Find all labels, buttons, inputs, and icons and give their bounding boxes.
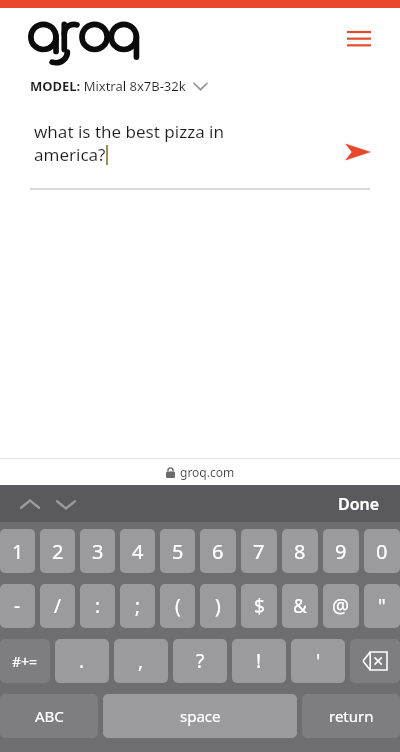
button[interactable]: Previous field: [14, 489, 46, 519]
button[interactable]: ?: [173, 639, 227, 683]
button[interactable]: space: [103, 694, 297, 738]
button[interactable]: /: [40, 584, 75, 628]
button[interactable]: &: [282, 584, 318, 628]
staticText: 4: [132, 538, 144, 565]
staticText: /: [54, 593, 62, 619]
button[interactable]: ABC: [0, 694, 98, 738]
button[interactable]: ): [200, 584, 236, 628]
button[interactable]: 2: [40, 529, 75, 573]
button[interactable]: @: [323, 584, 359, 628]
button[interactable]: Menu: [340, 22, 378, 56]
staticText: ABC: [35, 706, 64, 726]
button[interactable]: 7: [241, 529, 277, 573]
staticText: $: [254, 593, 265, 619]
staticText: -: [14, 593, 21, 619]
staticText: return: [329, 706, 374, 726]
staticText: ?: [196, 648, 205, 674]
button[interactable]: Backspace: [350, 639, 400, 683]
staticText: ": [378, 593, 386, 619]
staticText: .: [79, 648, 85, 674]
button[interactable]: return: [302, 694, 400, 738]
button[interactable]: 6: [200, 529, 236, 573]
button[interactable]: Send: [338, 134, 378, 170]
staticText: @: [332, 593, 350, 619]
staticText: what is the best pizza in: [34, 120, 224, 143]
staticText: MODEL: Mixtral 8x7B-32k: [30, 77, 186, 95]
button[interactable]: .: [55, 639, 109, 683]
staticText: 7: [253, 538, 265, 565]
button[interactable]: ,: [114, 639, 168, 683]
button[interactable]: Next field: [50, 489, 82, 519]
button[interactable]: ": [364, 584, 400, 628]
staticText: space: [180, 706, 221, 726]
staticText: 6: [212, 538, 224, 565]
button[interactable]: :: [80, 584, 115, 628]
staticText: &: [293, 593, 307, 619]
staticText: 0: [376, 538, 388, 565]
staticText: Done: [338, 493, 380, 515]
staticText: ': [316, 648, 321, 674]
button[interactable]: -: [0, 584, 35, 628]
button[interactable]: ;: [120, 584, 155, 628]
staticText: 9: [335, 538, 347, 565]
staticText: 3: [92, 538, 104, 565]
button[interactable]: 8: [282, 529, 318, 573]
staticText: america?: [34, 143, 106, 166]
staticText: #+=: [12, 652, 38, 671]
button[interactable]: 3: [80, 529, 115, 573]
staticText: 1: [12, 538, 24, 565]
button[interactable]: #+=: [0, 639, 50, 683]
button[interactable]: MODEL: Mixtral 8x7B-32k: [30, 70, 400, 102]
staticText: !: [256, 648, 262, 674]
staticText: ,: [138, 648, 144, 674]
button[interactable]: 1: [0, 529, 35, 573]
button[interactable]: 9: [323, 529, 359, 573]
staticText: (: [175, 593, 181, 619]
staticText: 8: [294, 538, 306, 565]
button[interactable]: $: [241, 584, 277, 628]
staticText: ): [215, 593, 221, 619]
button[interactable]: ': [291, 639, 345, 683]
button[interactable]: Done: [332, 489, 386, 519]
staticText: 2: [52, 538, 64, 565]
button[interactable]: 4: [120, 529, 155, 573]
button[interactable]: 5: [160, 529, 195, 573]
button[interactable]: 0: [364, 529, 400, 573]
staticText: 5: [172, 538, 184, 565]
staticText: ;: [135, 593, 141, 619]
button[interactable]: (: [160, 584, 195, 628]
staticText: groq.com: [180, 464, 235, 480]
staticText: :: [95, 593, 101, 619]
button[interactable]: !: [232, 639, 286, 683]
